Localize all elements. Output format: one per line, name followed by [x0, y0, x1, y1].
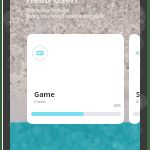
- staticText: This is your todo-list: [26, 7, 70, 13]
- staticText: Game: [34, 89, 55, 99]
- button[interactable]: Sport: [129, 34, 140, 124]
- staticText: 4 items: [136, 99, 140, 104]
- staticText: Sport: [136, 89, 140, 99]
- staticText: 5 items: [34, 99, 46, 104]
- other: Game category: [31, 44, 49, 62]
- staticText: 60%: [114, 103, 121, 108]
- button[interactable]: Game category: [27, 34, 124, 124]
- staticText: Today, you have 5 tasks to complete: [26, 13, 104, 19]
- staticText: Hello User!: [26, 0, 78, 6]
